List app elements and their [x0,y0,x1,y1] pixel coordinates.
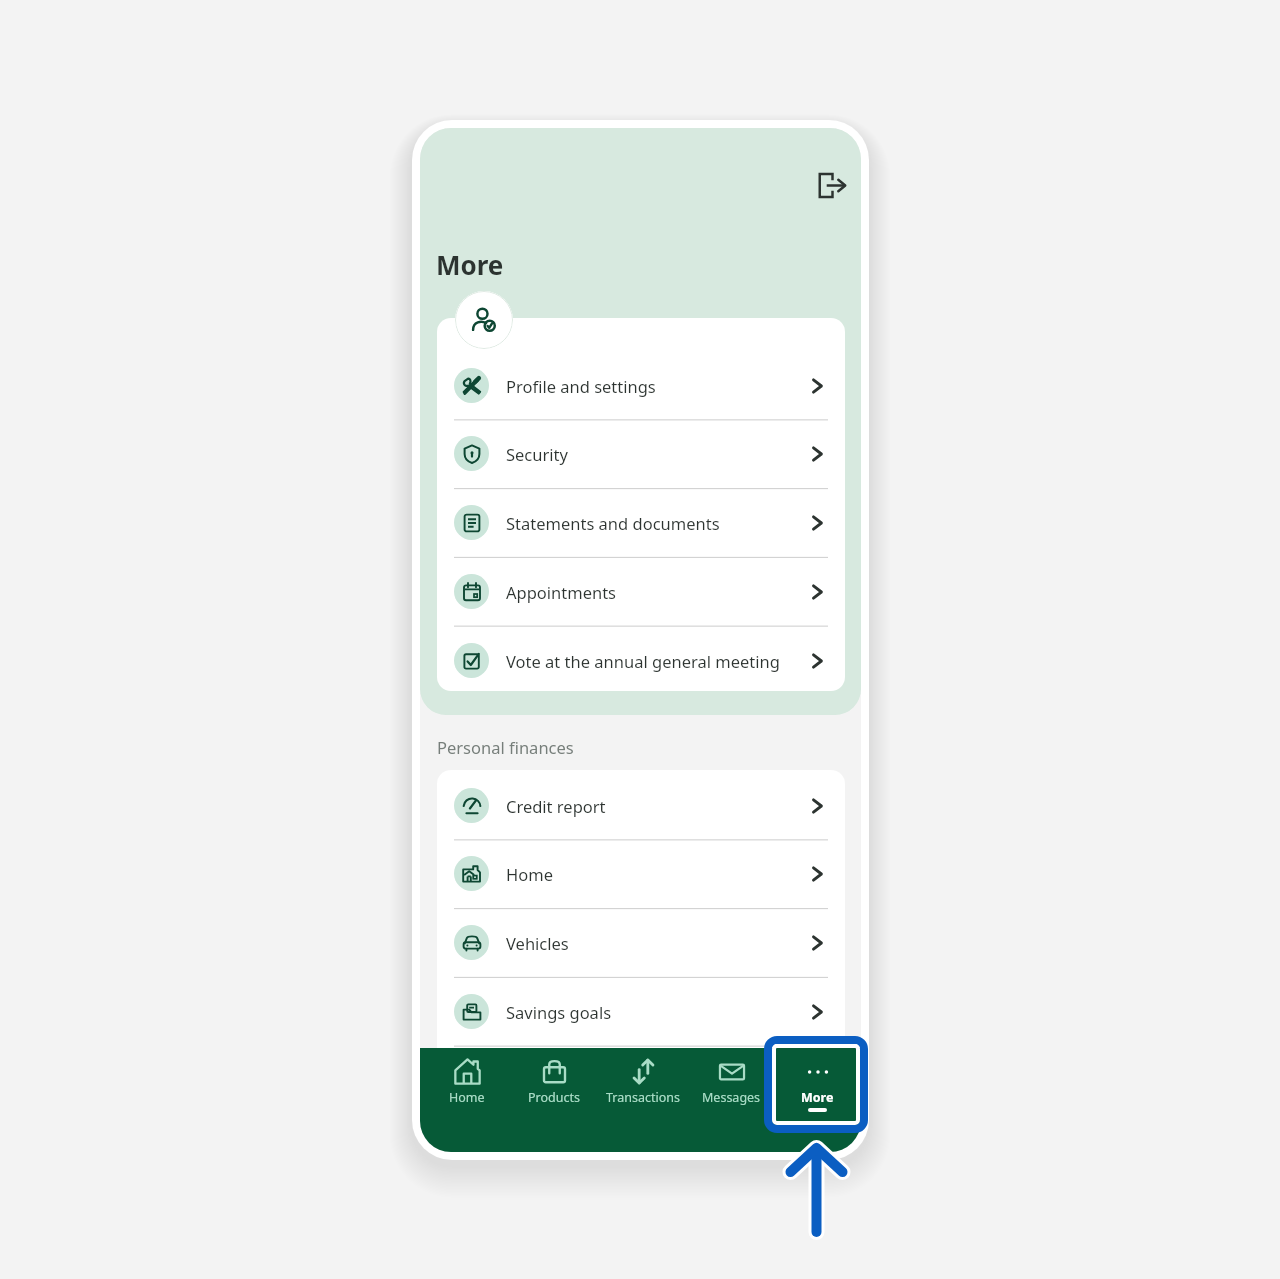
staticText: Personal finances [437,736,574,758]
staticText: Insurance [506,1070,806,1092]
button[interactable]: Security [437,419,845,488]
staticText: Messages [702,1089,761,1106]
button[interactable]: Log out [808,161,856,209]
button[interactable]: Statements and documents [437,488,845,557]
staticText: Credit report [506,795,806,817]
button[interactable]: Profile [455,291,513,349]
staticText: Home [449,1089,485,1106]
staticText: Transactions [606,1089,680,1106]
button[interactable]: Home [437,839,845,908]
button[interactable]: Profile and settings [437,351,845,420]
button[interactable]: Credit report [437,771,845,840]
staticText: More [801,1089,834,1106]
staticText: Statements and documents [506,512,806,534]
staticText: Vote at the annual general meeting [506,650,806,672]
button[interactable]: Savings goals [437,977,845,1046]
button[interactable]: More [768,1056,861,1128]
staticText: More [436,247,504,282]
staticText: Appointments [506,581,806,603]
button[interactable]: Home [420,1056,516,1128]
staticText: Home [506,863,806,885]
staticText: Products [528,1089,580,1106]
staticText: Security [506,443,806,465]
button[interactable]: Transactions [594,1056,692,1128]
staticText: Savings goals [506,1001,806,1023]
button[interactable]: Appointments [437,557,845,626]
button[interactable]: Messages [682,1056,780,1128]
button[interactable]: Products [505,1056,603,1128]
staticText: Profile and settings [506,375,806,397]
button[interactable]: Vehicles [437,908,845,977]
button[interactable]: Vote at the annual general meeting [437,626,845,691]
staticText: Vehicles [506,932,806,954]
button[interactable]: Insurance [437,1046,845,1115]
